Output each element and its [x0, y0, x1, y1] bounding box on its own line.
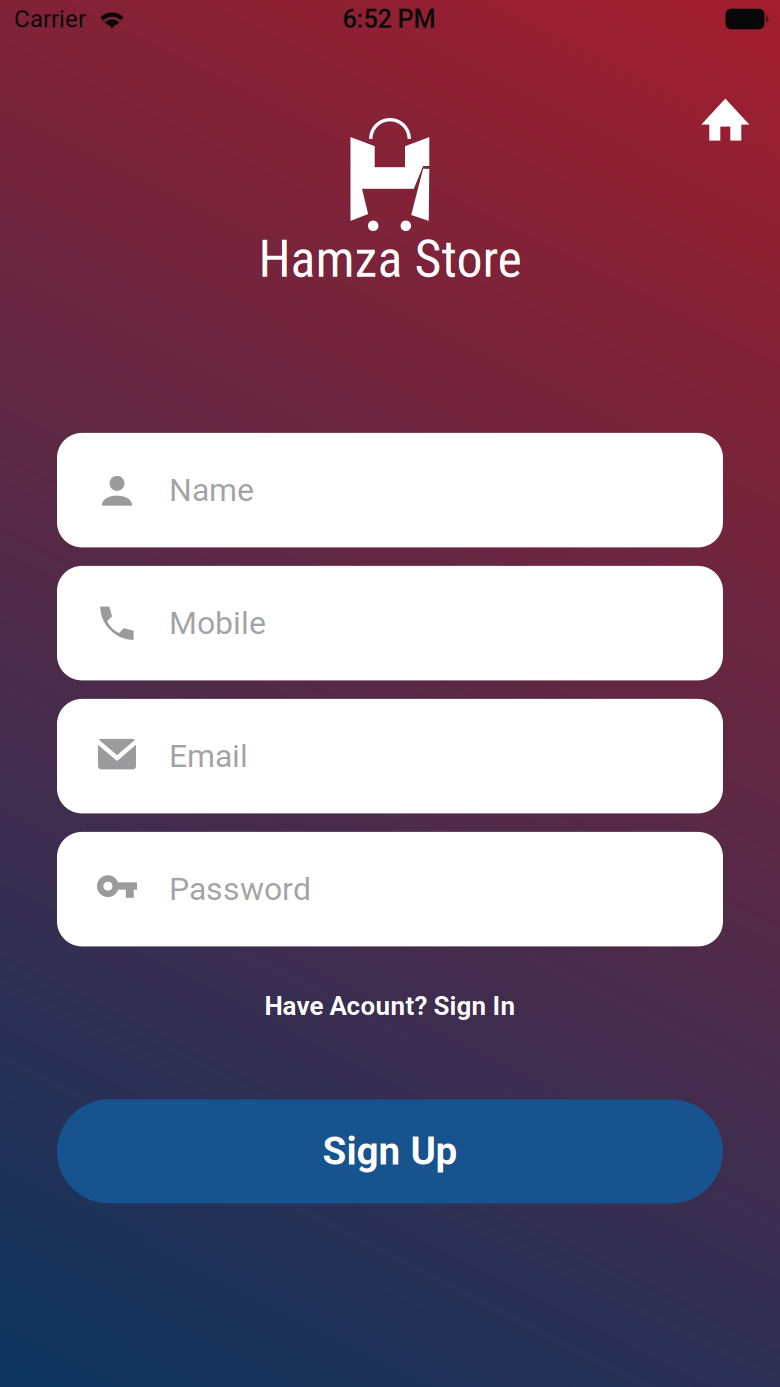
- button[interactable]: Sign Up: [57, 1099, 723, 1203]
- staticText: Email: [169, 737, 248, 775]
- staticText: Carrier: [14, 5, 86, 33]
- staticText: 6:52 PM: [342, 4, 435, 34]
- staticText: Mobile: [169, 604, 266, 642]
- staticText: Have Acount? Sign In: [264, 991, 515, 1021]
- staticText: Hamza Store: [258, 228, 521, 289]
- staticText: Password: [169, 870, 311, 908]
- staticText: Name: [169, 471, 254, 509]
- button[interactable]: Home: [692, 94, 758, 146]
- staticText: Sign Up: [322, 1129, 457, 1174]
- button[interactable]: Have Acount? Sign In: [248, 983, 531, 1029]
